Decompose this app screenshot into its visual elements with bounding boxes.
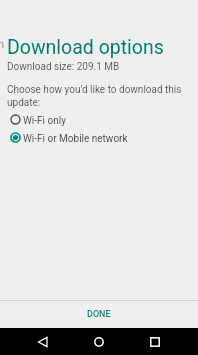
staticText: Download size: 209.1 MB — [7, 61, 120, 73]
button[interactable]: Home — [71, 328, 127, 355]
button[interactable]: Back — [15, 328, 71, 355]
staticText: n — [0, 38, 5, 51]
button[interactable]: Recent apps — [127, 328, 183, 355]
staticText: Wi-Fi only — [23, 115, 66, 127]
button[interactable]: DONE — [0, 301, 198, 328]
staticText: Download options — [7, 36, 164, 59]
staticText: Choose how you'd like to download this u… — [7, 84, 191, 109]
button[interactable]: Wi-Fi or Mobile network — [0, 128, 198, 146]
button[interactable]: Wi-Fi only — [0, 110, 198, 128]
staticText: Wi-Fi or Mobile network — [23, 133, 128, 145]
staticText: DONE — [87, 309, 111, 320]
